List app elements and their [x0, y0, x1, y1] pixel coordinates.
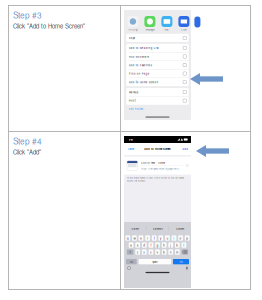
staticText: c	[150, 250, 152, 254]
button[interactable]: s	[135, 242, 140, 248]
staticText: Add	[182, 147, 188, 151]
button[interactable]: Dictate	[186, 267, 188, 270]
staticText: h	[163, 243, 165, 247]
button[interactable]: e	[139, 235, 143, 241]
staticText: ⌫	[182, 250, 187, 254]
button[interactable]: r	[145, 235, 150, 241]
button[interactable]: b	[162, 249, 166, 255]
staticText: k	[176, 243, 178, 247]
button[interactable]: Markup	[126, 88, 189, 96]
button[interactable]: m	[175, 249, 180, 255]
staticText: s	[137, 243, 139, 247]
button[interactable]: 123	[126, 259, 137, 264]
staticText: Add to Reading List	[129, 46, 159, 50]
button[interactable]: y	[158, 235, 163, 241]
staticText: Edit Actions…	[129, 107, 145, 110]
button[interactable]: h	[162, 242, 166, 248]
staticText: l	[183, 243, 184, 247]
staticText: Messages	[145, 28, 154, 31]
button[interactable]: g	[155, 242, 160, 248]
button[interactable]: ⌫	[182, 249, 188, 255]
staticText: Step #3	[13, 9, 42, 21]
staticText: Step #4	[13, 135, 42, 147]
button[interactable]: Cancel	[126, 147, 135, 151]
staticText: Mail	[164, 28, 169, 31]
staticText: Click "Add"	[13, 148, 41, 156]
staticText: Add Bookmark	[129, 54, 149, 58]
button[interactable]: Add Bookmark	[126, 52, 189, 61]
button[interactable]: c	[149, 249, 153, 255]
button[interactable]: k	[175, 242, 180, 248]
button[interactable]: j	[168, 242, 173, 248]
staticText: q	[127, 236, 129, 240]
button[interactable]: space	[139, 259, 171, 264]
staticText: Go	[179, 260, 182, 263]
button[interactable]: Edit Actions…	[124, 105, 191, 111]
staticText: ⇧	[129, 250, 132, 254]
staticText: "Survey"	[131, 227, 140, 230]
button[interactable]: u	[165, 235, 170, 241]
button[interactable]: Add to Favorites	[126, 61, 189, 69]
button[interactable]: z	[135, 249, 140, 255]
staticText: Add to Home Screen	[129, 80, 159, 84]
staticText: Print	[129, 99, 136, 103]
staticText: a	[130, 243, 132, 247]
staticText: Click "Add to Home Screen"	[13, 22, 85, 30]
staticText: https://covidpass.acuhs.org/app/covid…	[141, 167, 180, 170]
staticText: p	[186, 236, 188, 240]
staticText: Find on Page	[129, 72, 150, 75]
button[interactable]: f	[149, 242, 153, 248]
staticText: z	[137, 250, 139, 254]
staticText: 123	[130, 260, 133, 263]
staticText: n	[170, 250, 172, 254]
button[interactable]: i	[172, 235, 176, 241]
staticText: m	[176, 250, 179, 254]
staticText: x	[143, 250, 145, 254]
staticText: d	[143, 243, 145, 247]
staticText: AirDrop	[128, 28, 137, 31]
staticText: j	[170, 243, 171, 247]
staticText: space	[152, 260, 157, 263]
staticText: t	[154, 236, 155, 240]
button[interactable]: a	[129, 242, 133, 248]
button[interactable]: Go	[173, 259, 189, 264]
button[interactable]: x	[142, 249, 147, 255]
button[interactable]: Emoji	[127, 266, 131, 270]
button[interactable]: o	[178, 235, 183, 241]
button[interactable]: d	[142, 242, 147, 248]
staticText: e	[140, 236, 142, 240]
staticText: o	[180, 236, 182, 240]
staticText: Add to Favorites	[129, 63, 152, 67]
staticText: w	[133, 236, 135, 240]
staticText: Markup	[129, 90, 139, 94]
button[interactable]: ⇧	[127, 249, 133, 255]
button[interactable]: t	[152, 235, 156, 241]
staticText: r	[147, 236, 148, 240]
button[interactable]: Add to Home Screen	[126, 78, 189, 86]
staticText: u	[166, 236, 168, 240]
button[interactable]: w	[132, 235, 137, 241]
button[interactable]: q	[125, 235, 130, 241]
staticText: An icon will be added to your Home scree…	[127, 176, 184, 182]
button[interactable]: v	[155, 249, 160, 255]
button[interactable]: n	[168, 249, 173, 255]
staticText: b	[163, 250, 165, 254]
button[interactable]: Add	[181, 147, 189, 151]
staticText: v	[156, 250, 158, 254]
button[interactable]: l	[182, 242, 186, 248]
button[interactable]: Find on Page	[126, 69, 189, 78]
staticText: Cancel	[127, 147, 134, 151]
button[interactable]: p	[185, 235, 190, 241]
staticText: Zoom	[181, 28, 187, 31]
staticText: y	[160, 236, 162, 240]
staticText: Surveys	[176, 227, 184, 230]
staticText: 9:08	[129, 138, 133, 141]
button[interactable]: Copy	[126, 34, 189, 42]
button[interactable]: Print	[126, 97, 189, 105]
staticText: Copy	[129, 36, 135, 40]
staticText: f	[150, 243, 151, 247]
staticText: COVID Pass · Survey	[141, 161, 165, 164]
button[interactable]: Add to Reading List	[126, 44, 189, 52]
staticText: g	[156, 243, 158, 247]
staticText: Add to Home Screen	[144, 147, 171, 151]
